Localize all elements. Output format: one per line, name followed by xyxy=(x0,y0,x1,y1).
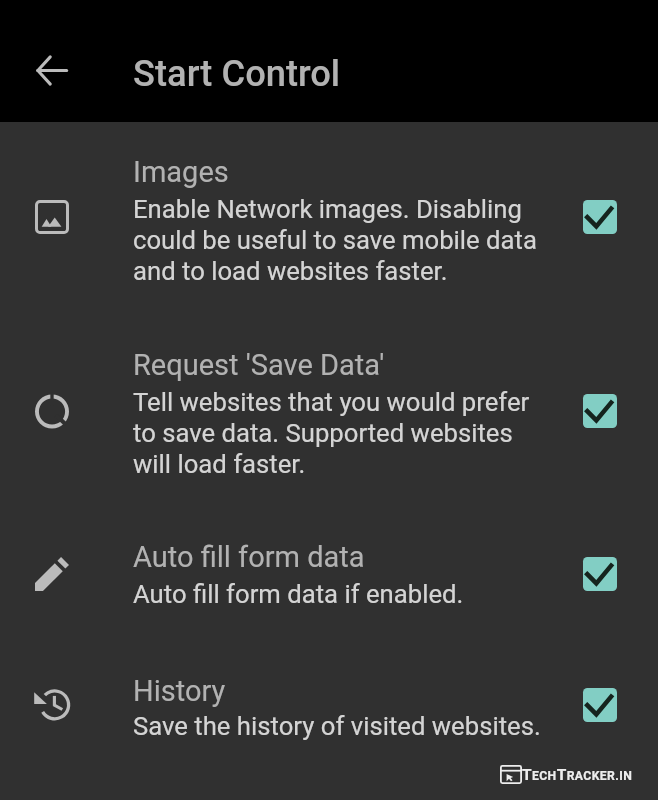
staticText: Save the history of visited websites. xyxy=(133,711,541,742)
staticText: Tell websites that you would prefer to s… xyxy=(133,387,530,480)
staticText: Images xyxy=(133,155,229,189)
button[interactable]: Request Save Data enabled, checkbox xyxy=(573,384,627,438)
button[interactable]: History enabled, checkbox xyxy=(573,678,627,732)
button[interactable]: History xyxy=(0,659,658,754)
staticText: Start Control xyxy=(133,52,341,95)
button[interactable]: Images xyxy=(0,140,658,300)
staticText: Auto fill form data if enabled. xyxy=(133,579,464,610)
staticText: Request 'Save Data' xyxy=(133,348,385,382)
staticText: Auto fill form data xyxy=(133,540,365,574)
button[interactable]: Auto fill form data xyxy=(0,526,658,621)
staticText: History xyxy=(133,674,226,708)
staticText: Enable Network images. Disabling could b… xyxy=(133,194,537,287)
button[interactable]: Auto fill form data enabled, checkbox xyxy=(573,547,627,601)
button[interactable]: Images enabled, checkbox xyxy=(573,190,627,244)
button[interactable]: Request 'Save Data' xyxy=(0,333,658,488)
button[interactable]: Back xyxy=(29,48,73,92)
staticText: TECHTRACKER.IN xyxy=(522,766,633,784)
